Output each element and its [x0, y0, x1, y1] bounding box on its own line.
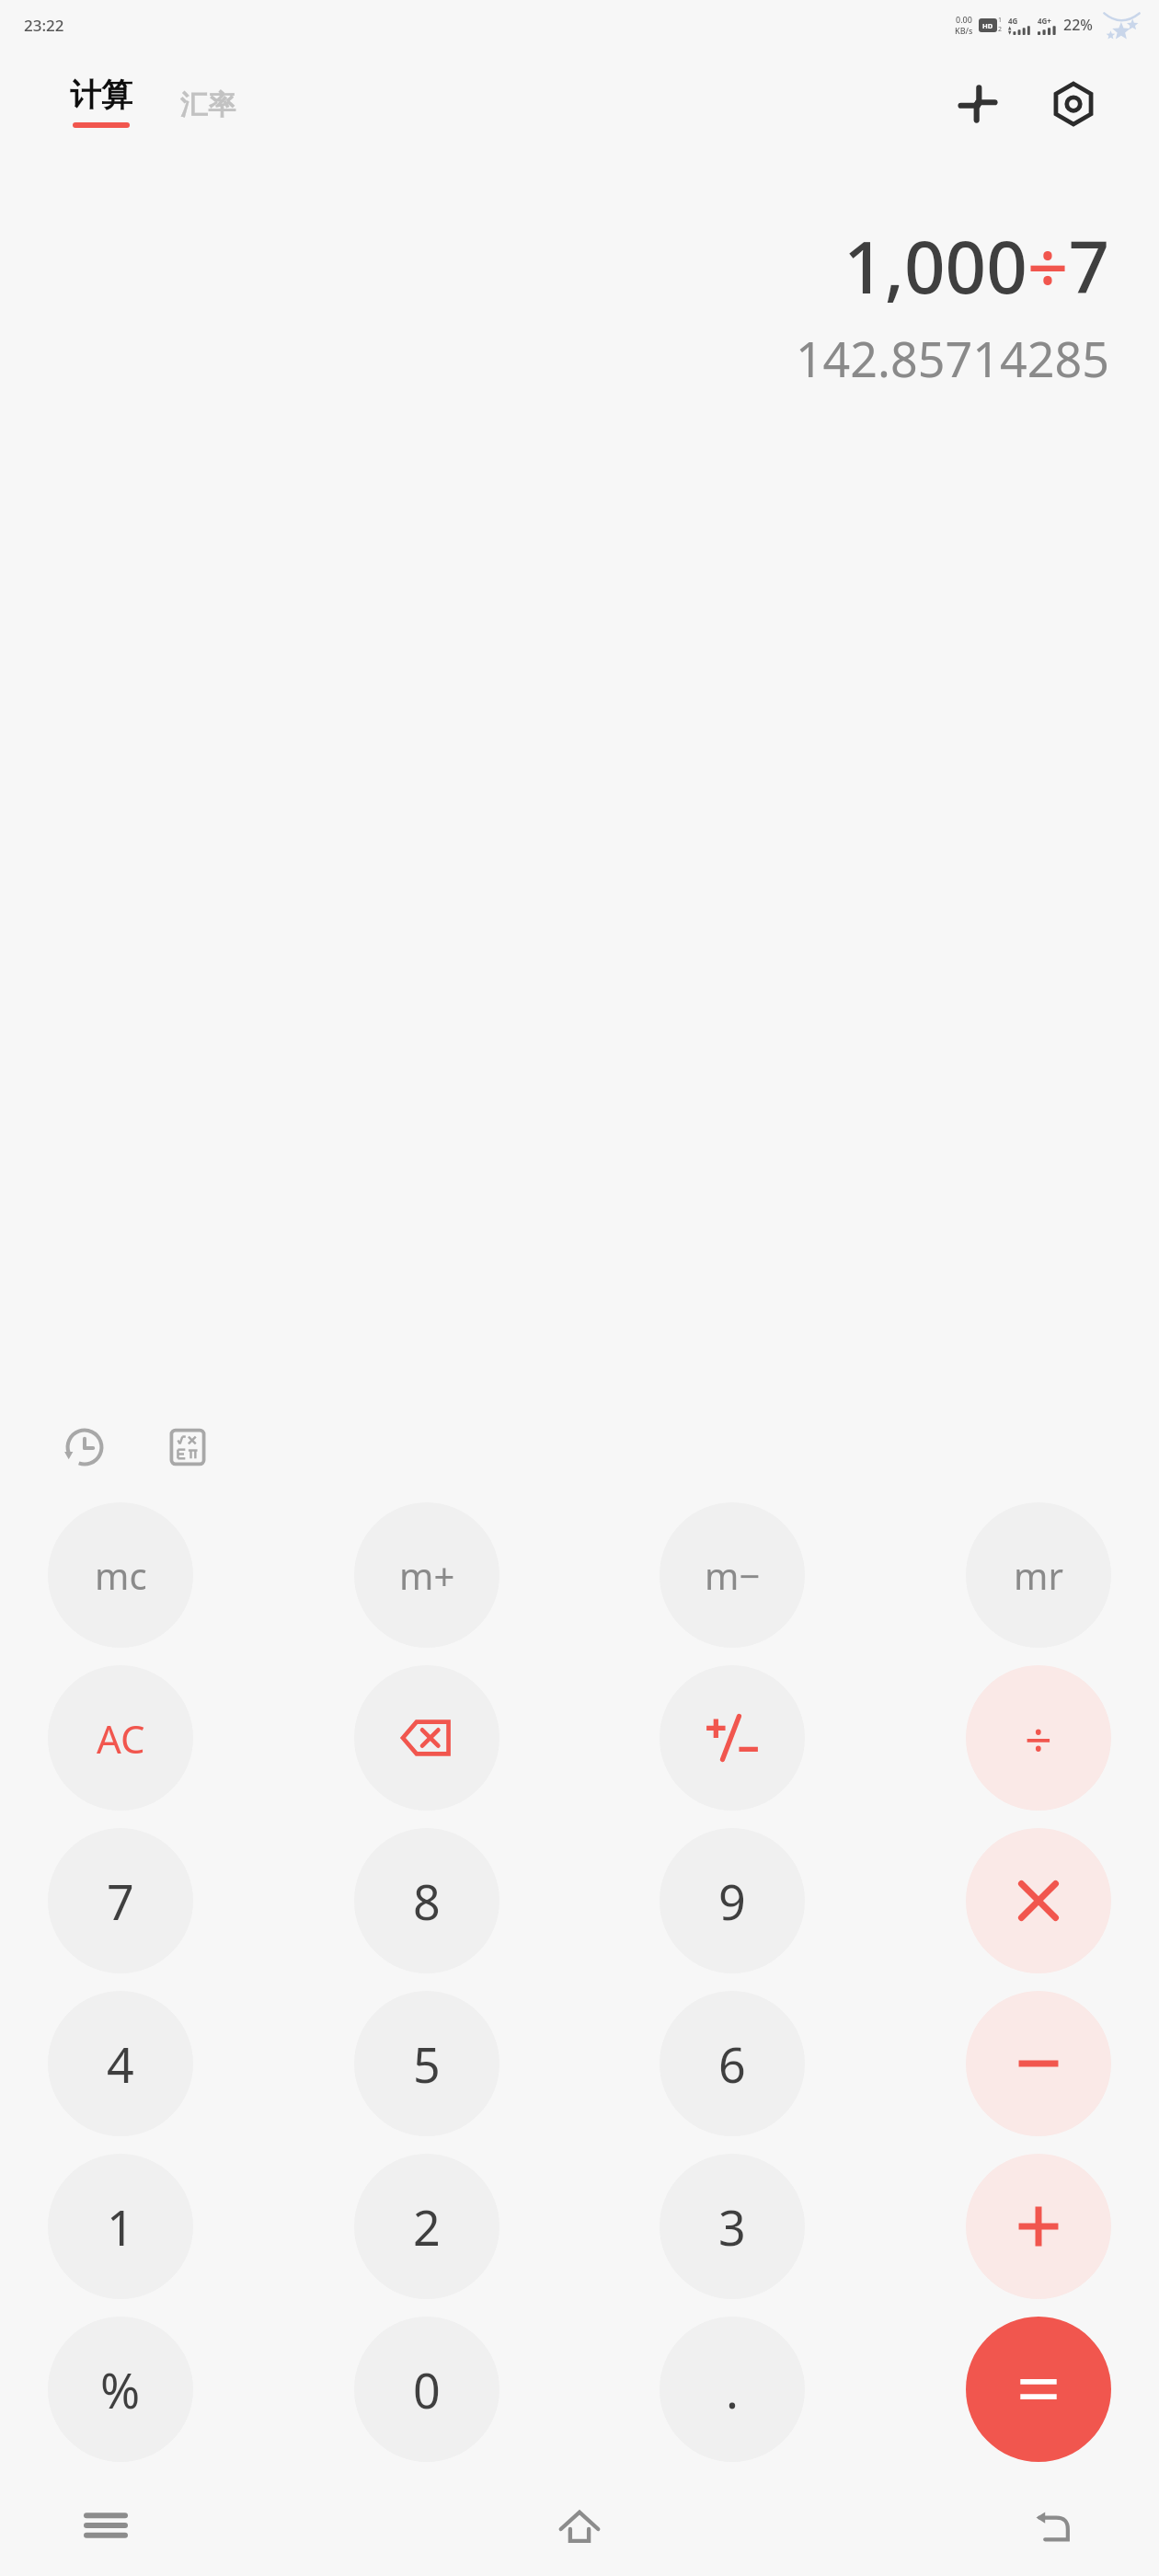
button[interactable]: Resize window: [946, 72, 1010, 136]
button[interactable]: 7: [48, 1828, 193, 1973]
button[interactable]: Backspace: [354, 1665, 499, 1811]
button[interactable]: 9: [660, 1828, 805, 1973]
button[interactable]: 3: [660, 2154, 805, 2299]
button[interactable]: Toggle sign: [660, 1665, 805, 1811]
button[interactable]: 8: [354, 1828, 499, 1973]
button[interactable]: Recent apps: [55, 2475, 156, 2576]
staticText: 0.00: [956, 14, 972, 25]
button[interactable]: %: [48, 2317, 193, 2462]
staticText: 1,000÷7: [843, 217, 1109, 315]
staticText: 4G+: [1038, 16, 1051, 26]
staticText: %: [100, 2357, 141, 2422]
button[interactable]: AC: [48, 1665, 193, 1811]
staticText: 9: [718, 1869, 746, 1934]
staticText: 23:22: [24, 15, 64, 36]
staticText: 142.85714285: [795, 326, 1109, 391]
staticText: 5: [413, 2031, 441, 2097]
staticText: 1: [107, 2194, 134, 2260]
staticText: 2: [998, 25, 1003, 34]
button[interactable]: mr: [966, 1502, 1111, 1648]
staticText: KB/s: [955, 25, 973, 36]
button[interactable]: 0: [354, 2317, 499, 2462]
staticText: 4: [107, 2031, 134, 2097]
button[interactable]: 2: [354, 2154, 499, 2299]
button[interactable]: Settings: [1041, 72, 1106, 136]
staticText: mr: [1014, 1550, 1063, 1600]
button[interactable]: 1: [48, 2154, 193, 2299]
button[interactable]: 6: [660, 1991, 805, 2136]
staticText: 22%: [1063, 15, 1093, 35]
button[interactable]: 4: [48, 1991, 193, 2136]
button[interactable]: 汇率: [177, 80, 239, 130]
button[interactable]: History: [52, 1414, 118, 1480]
button[interactable]: .: [660, 2317, 805, 2462]
button[interactable]: m+: [354, 1502, 499, 1648]
button[interactable]: Multiply: [966, 1828, 1111, 1973]
button[interactable]: ÷: [966, 1665, 1111, 1811]
staticText: 1: [998, 16, 1003, 25]
staticText: ÷: [1025, 1706, 1052, 1771]
button[interactable]: Subtract: [966, 1991, 1111, 2136]
button[interactable]: Equals: [966, 2317, 1111, 2462]
staticText: 0: [413, 2357, 441, 2422]
staticText: 4G: [1008, 16, 1018, 26]
button[interactable]: Back: [1003, 2475, 1104, 2576]
staticText: m−: [705, 1550, 761, 1600]
button[interactable]: Add: [966, 2154, 1111, 2299]
button[interactable]: m−: [660, 1502, 805, 1648]
staticText: .: [726, 2357, 739, 2422]
staticText: 计算: [70, 75, 132, 115]
button[interactable]: Home: [529, 2475, 630, 2576]
button[interactable]: 5: [354, 1991, 499, 2136]
button[interactable]: 计算: [66, 75, 136, 133]
staticText: HD: [982, 21, 993, 30]
staticText: m+: [399, 1550, 455, 1600]
staticText: 3: [718, 2194, 746, 2260]
staticText: 8: [413, 1869, 441, 1934]
button[interactable]: Scientific mode: [155, 1414, 221, 1480]
staticText: 2: [413, 2194, 441, 2260]
staticText: 7: [107, 1869, 134, 1934]
staticText: AC: [97, 1712, 145, 1765]
staticText: mc: [95, 1550, 147, 1600]
staticText: 6: [718, 2031, 746, 2097]
staticText: 汇率: [180, 87, 235, 122]
button[interactable]: mc: [48, 1502, 193, 1648]
